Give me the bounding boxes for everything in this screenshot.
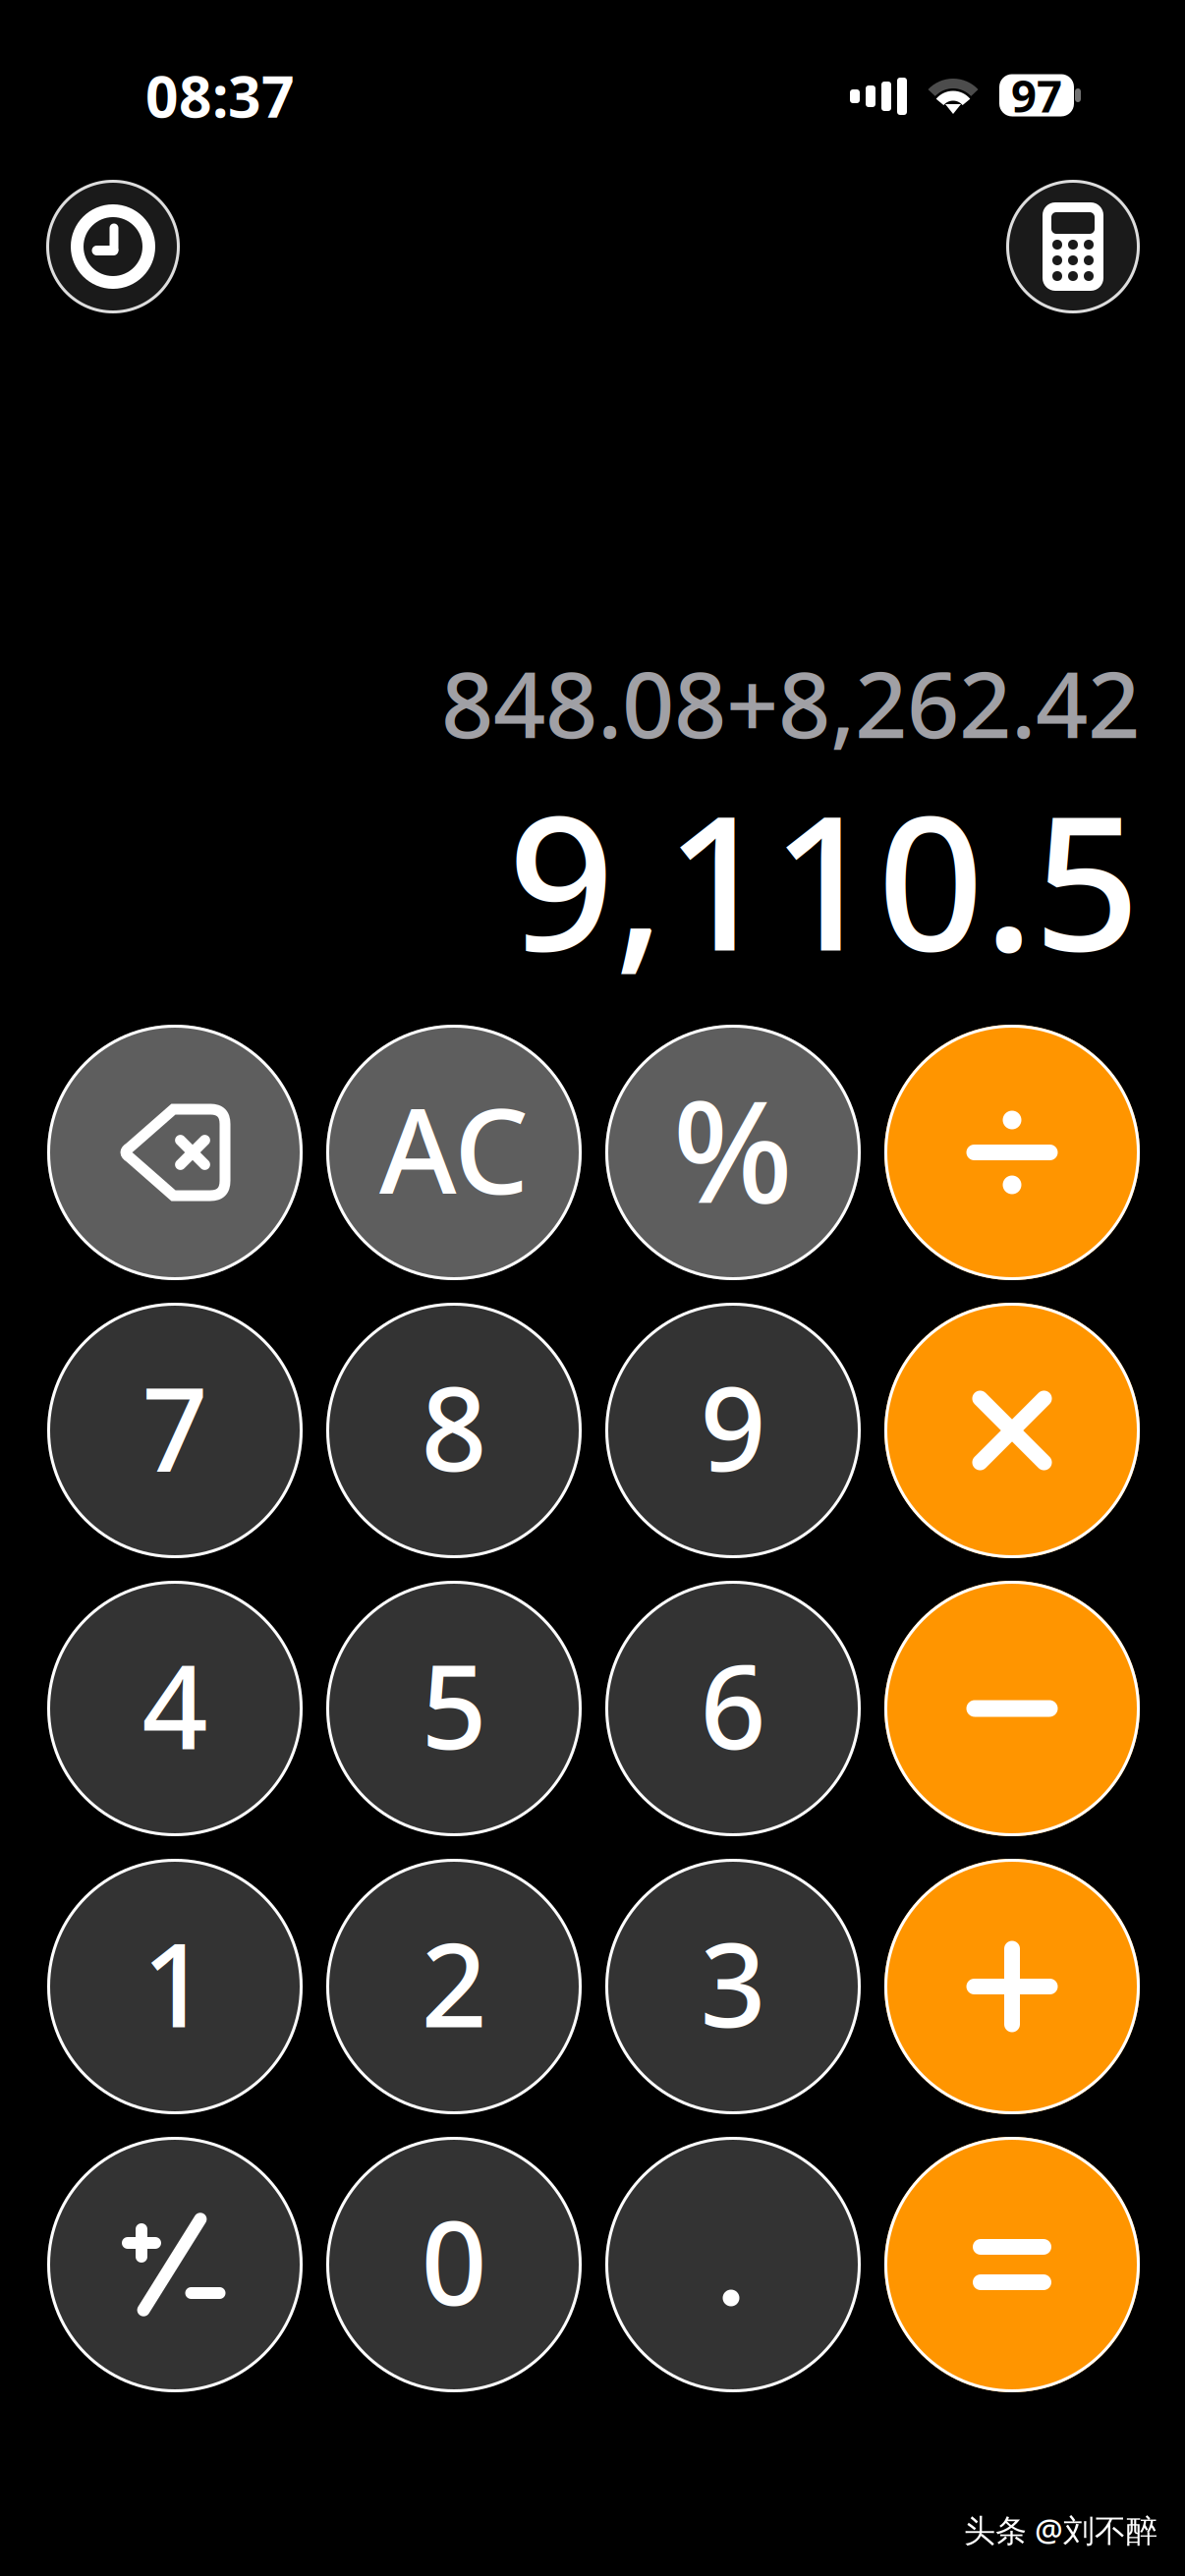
button[interactable]: 6 (605, 1581, 861, 1836)
staticText: 4 (142, 1628, 208, 1781)
staticText: 5 (421, 1628, 487, 1781)
button[interactable]: Minus (884, 1581, 1140, 1836)
button[interactable]: 2 (326, 1859, 582, 2114)
button[interactable]: Divide (884, 1025, 1140, 1280)
staticText: 6 (700, 1628, 766, 1781)
button[interactable]: Delete (47, 1025, 303, 1280)
staticText: 9,110.5 (508, 755, 1140, 1002)
button[interactable]: 1 (47, 1859, 303, 2114)
staticText: % (673, 1055, 793, 1242)
staticText: 9 (700, 1350, 766, 1503)
staticText: 8 (421, 1350, 487, 1503)
button[interactable]: Multiply (884, 1303, 1140, 1558)
button[interactable]: 0 (326, 2137, 582, 2392)
staticText: 1 (142, 1906, 208, 2059)
button[interactable]: Decimal point (605, 2137, 861, 2392)
button[interactable]: Plus minus (47, 2137, 303, 2392)
button[interactable]: Calculator mode (1006, 180, 1140, 313)
button[interactable]: Plus (884, 1859, 1140, 2114)
button[interactable]: Equals (884, 2137, 1140, 2392)
staticText: 0 (421, 2184, 487, 2337)
button[interactable]: Percent (605, 1025, 861, 1280)
staticText: AC (379, 1070, 529, 1227)
button[interactable]: History (46, 180, 180, 313)
button[interactable]: 7 (47, 1303, 303, 1558)
staticText: 08:37 (145, 57, 295, 134)
staticText: 97 (1011, 66, 1062, 125)
button[interactable]: 9 (605, 1303, 861, 1558)
button[interactable]: AC (326, 1025, 582, 1280)
button[interactable]: 3 (605, 1859, 861, 2114)
staticText: 2 (421, 1906, 487, 2059)
button[interactable]: 8 (326, 1303, 582, 1558)
staticText: 3 (700, 1906, 766, 2059)
staticText: 7 (142, 1350, 208, 1503)
button[interactable]: 4 (47, 1581, 303, 1836)
staticText: 头条 @刘不醉 (964, 2509, 1157, 2551)
staticText: 848.08+8,262.42 (441, 642, 1140, 763)
button[interactable]: 5 (326, 1581, 582, 1836)
